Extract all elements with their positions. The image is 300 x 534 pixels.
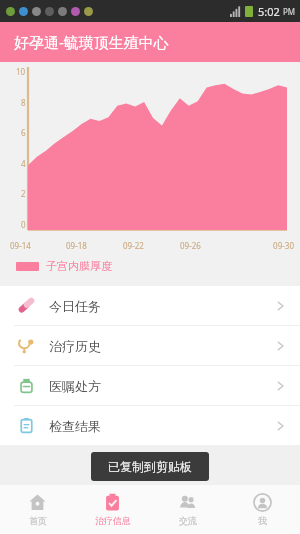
staticText: 我 [258,515,267,526]
staticText: 治疗历史 [49,338,101,354]
staticText: 8 [21,97,26,108]
staticText: 0 [21,219,26,230]
staticText: 09-14 [10,240,66,251]
button[interactable]: 交流 [150,485,225,534]
staticText: 已复制到剪贴板 [108,459,192,474]
staticText: 09-30 [237,240,294,251]
staticText: 5:02 [258,4,280,19]
staticText: 检查结果 [49,418,101,434]
button[interactable]: 检查结果 [0,406,300,445]
staticText: 今日任务 [49,298,101,314]
staticText: PM [283,6,296,17]
button[interactable]: 治疗历史 [0,326,300,365]
staticText: 好孕通-毓璜顶生殖中心 [14,32,169,52]
staticText: 09-26 [180,240,237,251]
button[interactable]: 首页 [0,485,75,534]
staticText: 交流 [179,515,197,526]
staticText: 10 [16,66,26,77]
staticText: 09-18 [66,240,123,251]
staticText: 首页 [29,515,47,526]
staticText: 子宫内膜厚度 [46,259,112,273]
staticText: 6 [21,127,26,138]
button[interactable]: 治疗信息 [75,485,150,534]
staticText: 09-22 [123,240,180,251]
staticText: 2 [21,188,26,199]
button[interactable]: 医嘱处方 [0,366,300,405]
button[interactable]: 我 [225,485,300,534]
staticText: 治疗信息 [95,515,131,526]
staticText: 4 [21,158,26,169]
button[interactable]: 今日任务 [0,286,300,325]
staticText: 医嘱处方 [49,378,101,394]
